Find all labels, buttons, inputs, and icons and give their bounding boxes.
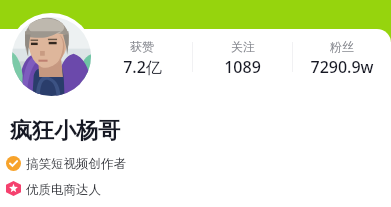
staticText: 获赞 xyxy=(130,39,154,54)
staticText: 7.2亿 xyxy=(123,56,162,78)
staticText: 粉丝 xyxy=(330,39,354,54)
staticText: 7290.9w xyxy=(310,56,374,78)
staticText: 关注 xyxy=(231,39,255,54)
button[interactable]: 搞笑短视频创作者 xyxy=(6,156,126,172)
staticText: 优质电商达人 xyxy=(26,182,101,198)
staticText: 1089 xyxy=(224,56,261,78)
button[interactable]: Profile avatar xyxy=(8,13,94,99)
staticText: 疯狂小杨哥 xyxy=(10,117,120,145)
button[interactable]: 关注 xyxy=(193,39,292,78)
button[interactable]: 粉丝 xyxy=(293,39,391,78)
staticText: 搞笑短视频创作者 xyxy=(26,156,126,172)
button[interactable]: 获赞 xyxy=(92,39,192,78)
button[interactable]: 优质电商达人 xyxy=(6,182,101,198)
